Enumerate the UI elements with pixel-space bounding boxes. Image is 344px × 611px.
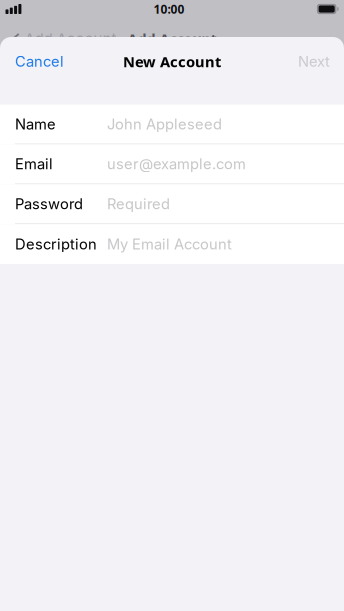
staticText: My Email Account [107, 235, 232, 253]
staticText: 10:00 [153, 1, 184, 17]
staticText: Description [15, 235, 97, 253]
staticText: Next [298, 53, 330, 70]
staticText: Required [107, 195, 170, 213]
staticText: Name [15, 115, 56, 133]
staticText: user@example.com [107, 155, 246, 173]
staticText: Add Account [24, 30, 116, 48]
staticText: Cancel [15, 53, 64, 70]
staticText: Add Account [127, 29, 216, 49]
staticText: Password [15, 195, 83, 213]
staticText: John Appleseed [107, 115, 222, 133]
staticText: Email [15, 155, 53, 173]
button[interactable]: Next [286, 40, 344, 83]
button[interactable]: Cancel [0, 40, 76, 83]
staticText: New Account [123, 51, 221, 71]
